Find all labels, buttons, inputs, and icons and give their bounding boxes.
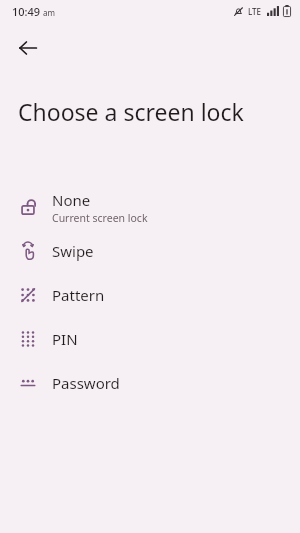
- staticText: am: [43, 7, 55, 18]
- staticText: Swipe: [52, 241, 94, 261]
- staticText: Pattern: [52, 285, 105, 305]
- staticText: Current screen lock: [52, 211, 148, 225]
- button[interactable]: Password: [0, 361, 300, 405]
- staticText: PIN: [52, 329, 78, 349]
- staticText: None: [52, 190, 91, 210]
- staticText: LTE: [248, 6, 262, 17]
- button[interactable]: None: [0, 185, 300, 229]
- button[interactable]: Swipe: [0, 229, 300, 273]
- button[interactable]: PIN: [0, 317, 300, 361]
- staticText: Choose a screen lock: [18, 96, 244, 127]
- button[interactable]: Pattern: [0, 273, 300, 317]
- staticText: 10:49: [12, 4, 41, 19]
- staticText: Password: [52, 373, 120, 393]
- button[interactable]: Back: [6, 26, 50, 70]
